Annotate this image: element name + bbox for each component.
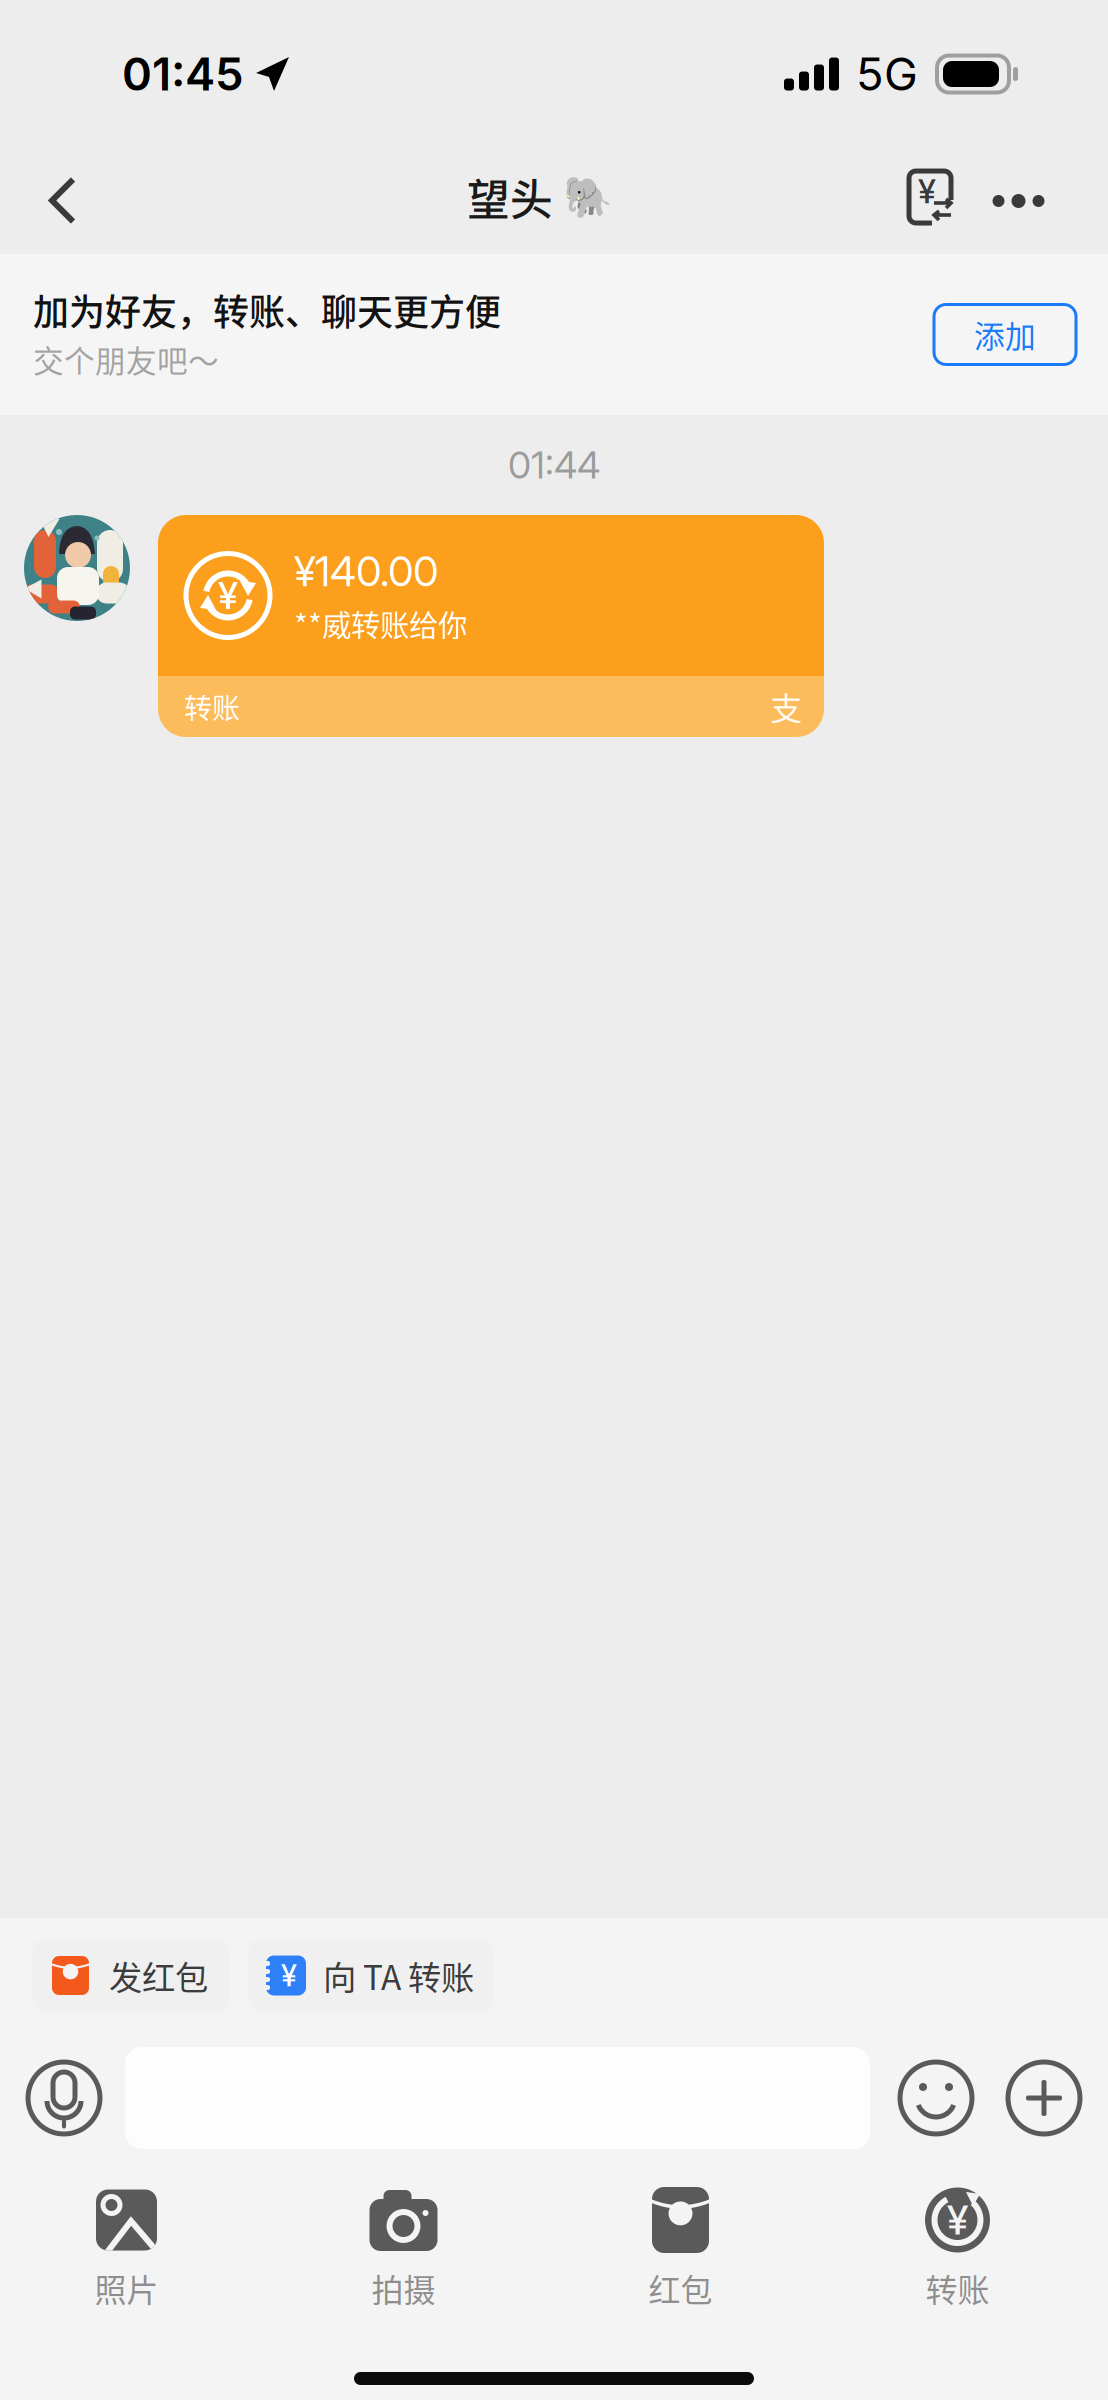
staticText: 01:44 xyxy=(508,442,600,488)
staticText: **威转账给你 xyxy=(294,602,467,645)
staticText: 交个朋友吧～ xyxy=(33,337,219,381)
staticText: 01:45 xyxy=(122,47,244,101)
staticText: ¥ xyxy=(918,171,936,211)
staticText: 转账 xyxy=(184,686,240,727)
staticText: ¥140.00 xyxy=(294,546,438,596)
staticText: 添加 xyxy=(974,312,1036,357)
button[interactable]: Back xyxy=(4,148,122,254)
staticText: 向 TA 转账 xyxy=(323,1951,474,2000)
staticText: 🐘 xyxy=(563,174,613,220)
staticText: 红包 xyxy=(648,2265,712,2311)
staticText: 加为好友，转账、聊天更方便 xyxy=(33,284,501,336)
button[interactable]: More xyxy=(974,148,1063,254)
button[interactable]: 添加 xyxy=(934,304,1076,364)
button[interactable]: Add attachment xyxy=(1006,2060,1082,2136)
button[interactable]: Voice message xyxy=(26,2060,102,2136)
button[interactable]: ¥ xyxy=(248,1939,494,2012)
staticText: 5G xyxy=(856,47,918,101)
button[interactable]: Emoji xyxy=(898,2060,974,2136)
staticText: 支 xyxy=(770,683,802,730)
button[interactable]: ¥ xyxy=(819,2186,1096,2306)
button[interactable]: 红包 xyxy=(542,2186,819,2306)
staticText: 发红包 xyxy=(109,1951,208,2000)
button[interactable]: 拍摄 xyxy=(265,2186,542,2306)
staticText: 望头 xyxy=(467,166,553,228)
staticText: ¥ xyxy=(281,1958,297,1993)
staticText: ¥ xyxy=(947,2196,968,2244)
staticText: ¥ xyxy=(218,573,238,618)
button[interactable]: 照片 xyxy=(0,2186,265,2306)
staticText: 转账 xyxy=(925,2265,989,2311)
button[interactable]: Transfer record xyxy=(886,148,974,254)
staticText: 照片 xyxy=(94,2265,158,2311)
button[interactable]: 发红包 xyxy=(32,1939,230,2012)
staticText: 拍摄 xyxy=(371,2265,435,2311)
